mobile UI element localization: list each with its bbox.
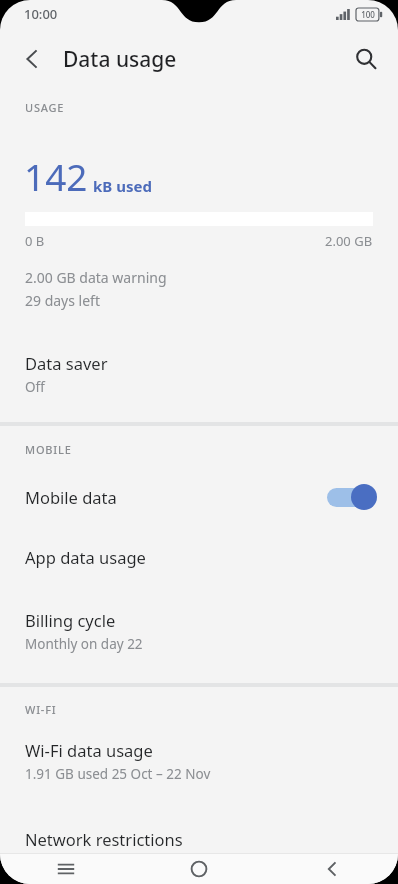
button[interactable]: Back	[8, 35, 56, 83]
staticText: 142	[24, 151, 88, 201]
button[interactable]: Recent apps	[0, 854, 132, 884]
button[interactable]: App data usage	[0, 543, 398, 571]
staticText: WI-FI	[25, 702, 57, 717]
staticText: Billing cycle	[25, 609, 116, 631]
staticText: Network restrictions	[25, 828, 183, 850]
button[interactable]: Search	[342, 35, 390, 83]
staticText: USAGE	[25, 100, 65, 115]
staticText: 0 B	[25, 232, 45, 250]
staticText: 10:00	[24, 5, 58, 23]
staticText: kB used	[93, 176, 152, 196]
staticText: 29 days left	[25, 291, 100, 310]
staticText: 1.91 GB used 25 Oct – 22 Nov	[25, 765, 211, 783]
staticText: 2.00 GB data warning	[25, 268, 167, 287]
staticText: Off	[25, 378, 45, 396]
button[interactable]: Mobile data	[0, 477, 398, 517]
button[interactable]: Wi-Fi data usage	[0, 737, 398, 791]
staticText: Monthly on day 22	[25, 635, 143, 653]
staticText: 100	[361, 9, 375, 20]
button[interactable]: Mobile data toggle	[326, 483, 378, 511]
staticText: 2.00 GB	[325, 232, 373, 250]
staticText: Data usage	[63, 45, 177, 74]
button[interactable]: Home	[132, 854, 265, 884]
staticText: App data usage	[25, 546, 146, 568]
button[interactable]: Back	[265, 854, 398, 884]
button[interactable]: Billing cycle	[0, 607, 398, 661]
button[interactable]: Data saver	[0, 350, 398, 404]
staticText: Mobile data	[25, 486, 117, 508]
staticText: MOBILE	[25, 442, 72, 457]
button[interactable]: Network restrictions	[0, 825, 398, 853]
staticText: Data saver	[25, 352, 108, 374]
staticText: Wi-Fi data usage	[25, 739, 153, 761]
